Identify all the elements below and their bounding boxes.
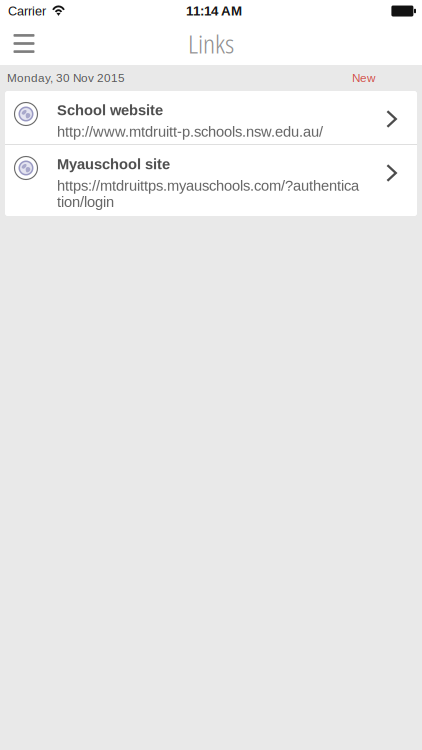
staticText: https://mtdruittps.myauschools.com/?auth… <box>57 177 359 210</box>
staticText: Carrier <box>8 4 46 18</box>
staticText: New <box>352 71 375 84</box>
button[interactable]: New <box>352 71 422 84</box>
staticText: Monday, 30 Nov 2015 <box>7 71 125 84</box>
staticText: Myauschool site <box>57 156 170 172</box>
staticText: 11:14 AM <box>186 4 242 18</box>
button[interactable]: Myauschool site <box>5 145 417 216</box>
button[interactable]: Menu <box>0 22 48 65</box>
staticText: School website <box>57 102 163 118</box>
staticText: http://www.mtdruitt-p.schools.nsw.edu.au… <box>57 123 323 140</box>
staticText: Links <box>188 26 234 61</box>
button[interactable]: School website <box>5 91 417 144</box>
